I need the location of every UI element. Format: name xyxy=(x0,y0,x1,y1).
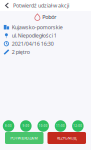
staticText: Potwierdź udział w akcji xyxy=(13,2,69,9)
staticText: ul. Niepodległości 1 xyxy=(12,32,57,39)
staticText: 10:00 xyxy=(39,124,48,128)
button[interactable]: 8:00 xyxy=(3,120,14,132)
staticText: 11:00 xyxy=(56,124,65,128)
staticText: 2 piętro xyxy=(12,48,30,56)
button[interactable]: 12:00 xyxy=(72,120,84,132)
button[interactable]: 11:00 xyxy=(55,120,66,132)
staticText: 8:00 xyxy=(5,124,12,128)
staticText: 12:00 xyxy=(73,124,82,128)
staticText: Kujawsko-pomorskie xyxy=(12,24,63,31)
button[interactable]: Back xyxy=(1,0,13,11)
staticText: 9:00 xyxy=(22,124,29,128)
button[interactable]: 9:00 xyxy=(20,120,32,132)
staticText: 2021/04/16 16:30 xyxy=(12,40,54,47)
staticText: REZYGNUJĘ xyxy=(57,135,77,141)
button[interactable]: 10:00 xyxy=(37,120,49,132)
button[interactable]: REZYGNUJĘ xyxy=(47,132,86,144)
button[interactable]: POTWIERDZAM xyxy=(5,132,43,144)
staticText: POTWIERDZAM xyxy=(10,135,38,141)
staticText: Pobór xyxy=(42,13,56,21)
